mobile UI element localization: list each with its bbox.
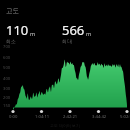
staticText: 400 <box>3 76 11 82</box>
staticText: 150 <box>3 103 11 109</box>
staticText: 1:04:11 <box>35 114 50 120</box>
staticText: 최대 <box>62 38 72 44</box>
staticText: 500 <box>3 65 11 71</box>
staticText: 2:42:21 <box>63 114 78 120</box>
button[interactable]: 고도 <box>5 7 20 15</box>
staticText: 300 <box>3 86 11 92</box>
staticText: 110 <box>6 21 29 39</box>
staticText: 600 <box>3 55 11 61</box>
staticText: 566 <box>62 21 85 39</box>
staticText: 0:00 <box>9 114 18 120</box>
button[interactable]: 110 <box>6 21 65 45</box>
staticText: 200 <box>3 95 11 101</box>
staticText: 700 <box>3 44 11 50</box>
staticText: 고도 <box>6 7 19 15</box>
staticText: m <box>86 30 92 37</box>
button[interactable]: 566 <box>62 21 127 45</box>
staticText: 최소 <box>6 38 16 44</box>
staticText: m <box>30 30 36 37</box>
staticText: 5:02:53 <box>120 114 130 120</box>
staticText: 3:44:42 <box>92 114 107 120</box>
staticText: 고도 데이터 보기 <box>50 123 81 128</box>
